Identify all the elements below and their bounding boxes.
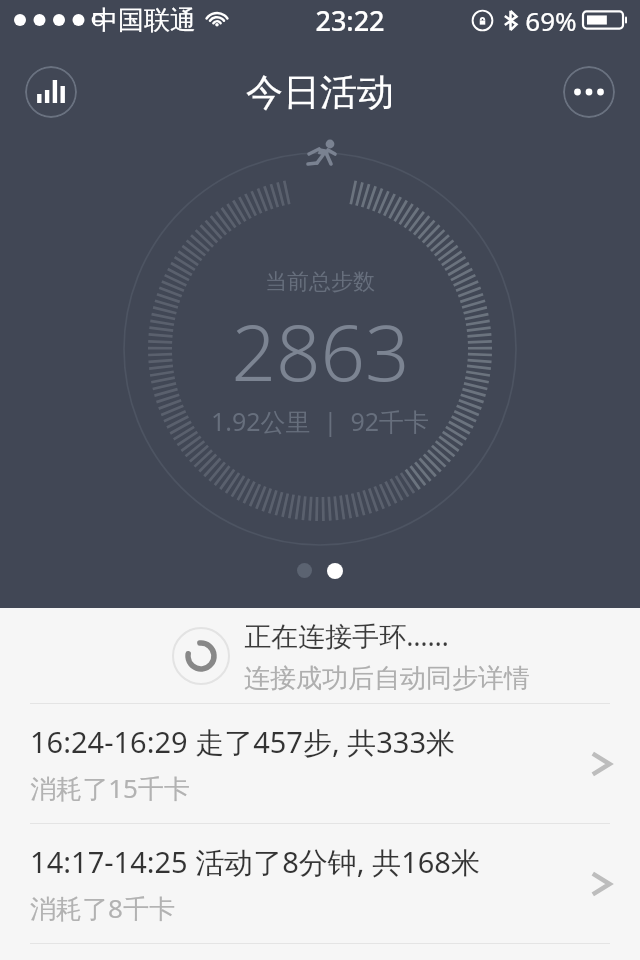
staticText: 14:17-14:25 活动了8分钟, 共168米 (30, 842, 480, 882)
staticText: 当前总步数 (265, 268, 375, 296)
staticText: 连接成功后自动同步详情 (244, 662, 530, 695)
staticText: 消耗了8千卡 (30, 890, 175, 926)
staticText: 正在连接手环…… (244, 617, 449, 654)
button[interactable]: 今日活动 (246, 69, 394, 116)
button[interactable]: 16:24-16:29 走了457步, 共333米 (0, 704, 640, 823)
staticText: 16:24-16:29 走了457步, 共333米 (30, 722, 455, 762)
button[interactable]: 14:17-14:25 活动了8分钟, 共168米 (0, 824, 640, 943)
staticText: 1.92公里 | 92千卡 (211, 404, 429, 438)
staticText: 今日活动 (246, 69, 394, 116)
button[interactable]: More options (563, 66, 615, 118)
staticText: 23:22 (315, 2, 385, 39)
staticText: 消耗了15千卡 (30, 770, 190, 806)
staticText: 69% (525, 3, 577, 38)
button[interactable]: 正在连接手环…… (0, 608, 640, 703)
staticText: 2863 (231, 298, 410, 404)
button[interactable]: Statistics (25, 66, 77, 118)
staticText: 中国联通 (92, 4, 196, 37)
